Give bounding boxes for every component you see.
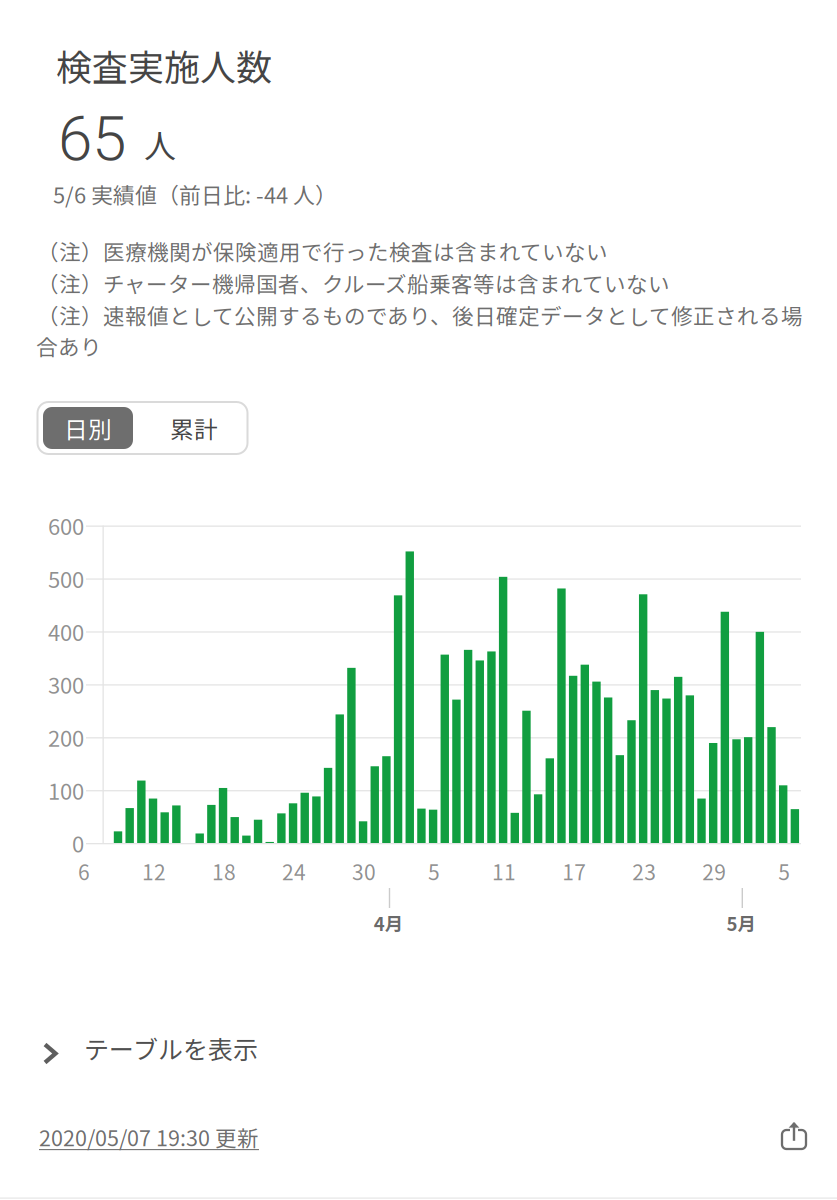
staticText: 6 bbox=[78, 856, 90, 886]
staticText: 2020/05/07 19:30 更新 bbox=[39, 1121, 259, 1152]
button[interactable]: 2020/05/07 19:30 更新 bbox=[39, 1121, 319, 1153]
staticText: （注）医療機関が保険適用で行った検査は含まれていない bbox=[37, 235, 608, 266]
staticText: 累計 bbox=[170, 411, 218, 445]
staticText: 500 bbox=[48, 562, 84, 594]
staticText: （注）速報値として公開するものであり、後日確定データとして修正される場 bbox=[37, 299, 803, 330]
staticText: 5/6 実績値（前日比: -44 人） bbox=[53, 178, 337, 210]
staticText: 600 bbox=[48, 510, 84, 541]
staticText: 23 bbox=[632, 856, 656, 886]
staticText: 4月 bbox=[374, 909, 404, 936]
button[interactable]: 累計 bbox=[149, 407, 239, 449]
staticText: （注）チャーター機帰国者、クルーズ船乗客等は含まれていない bbox=[37, 267, 670, 298]
staticText: 11 bbox=[492, 856, 516, 886]
staticText: 5月 bbox=[727, 909, 757, 936]
button[interactable]: 共有 bbox=[782, 1122, 808, 1152]
staticText: 200 bbox=[48, 721, 84, 753]
staticText: 5 bbox=[428, 856, 440, 886]
staticText: 65 bbox=[58, 103, 126, 175]
staticText: 検査実施人数 bbox=[56, 39, 272, 91]
staticText: 12 bbox=[142, 856, 166, 886]
staticText: 0 bbox=[72, 827, 84, 859]
staticText: 17 bbox=[562, 856, 586, 886]
staticText: 24 bbox=[282, 856, 306, 886]
staticText: 人 bbox=[144, 121, 176, 167]
staticText: 18 bbox=[212, 856, 236, 886]
staticText: 日別 bbox=[64, 411, 112, 445]
staticText: 300 bbox=[48, 668, 84, 700]
staticText: 100 bbox=[48, 774, 84, 806]
button[interactable]: 日別 bbox=[43, 407, 133, 449]
button[interactable]: テーブルを表示 bbox=[42, 1029, 342, 1073]
staticText: テーブルを表示 bbox=[84, 1030, 258, 1066]
staticText: 合あり bbox=[36, 330, 102, 361]
staticText: 30 bbox=[352, 856, 376, 886]
staticText: 29 bbox=[702, 856, 726, 886]
staticText: 5 bbox=[778, 856, 790, 886]
staticText: 400 bbox=[48, 615, 84, 647]
